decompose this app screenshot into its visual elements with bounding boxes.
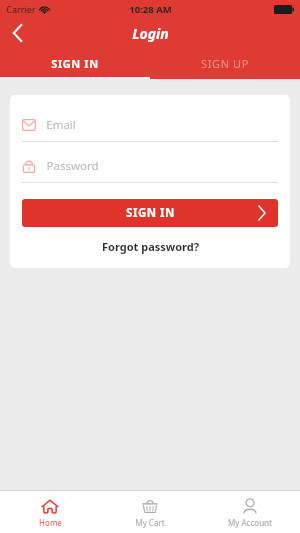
button[interactable]: Home [0,491,100,533]
button[interactable]: Email [22,113,278,142]
staticText: Carrier [6,3,36,15]
button[interactable]: Back [0,18,34,48]
staticText: My Account [228,517,272,528]
button[interactable]: SIGN IN [22,199,278,227]
button[interactable]: Password [22,154,278,183]
staticText: My Cart [135,517,165,528]
staticText: Home [39,517,62,528]
staticText: Password [46,158,99,174]
button[interactable]: Forgot password? [22,239,278,254]
staticText: SIGN UP [201,56,249,71]
staticText: Forgot password? [102,239,199,254]
button[interactable]: My Cart [100,491,200,533]
staticText: SIGN IN [126,205,175,221]
staticText: SIGN IN [51,56,99,71]
button[interactable]: My Account [200,491,300,533]
staticText: Email [46,117,76,133]
button[interactable]: SIGN IN [0,48,150,79]
staticText: 10:28 AM [129,3,172,16]
button[interactable]: SIGN UP [150,48,300,79]
staticText: Login [132,24,169,43]
